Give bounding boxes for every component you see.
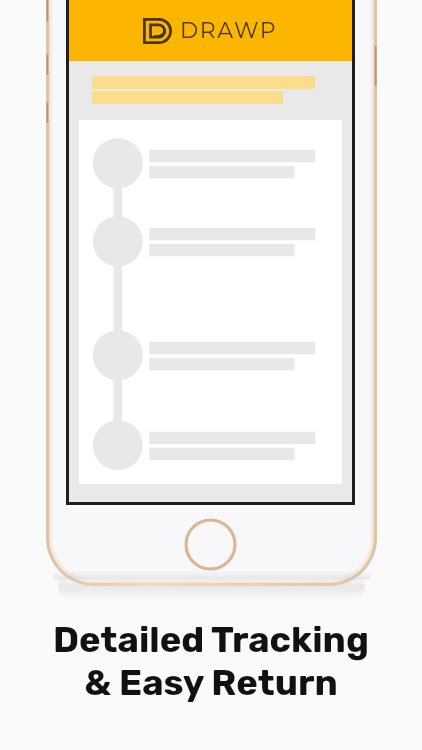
staticText: DRAWP [180,17,278,44]
button[interactable]: DRAWP [69,0,352,61]
staticText: Detailed Tracking & Easy Return [0,618,422,704]
button[interactable]: Home [184,518,237,571]
